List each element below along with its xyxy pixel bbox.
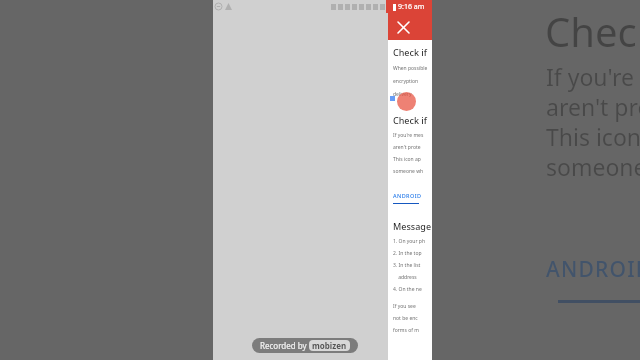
staticText: 9:16 am	[398, 2, 425, 12]
staticText: mobizen	[312, 340, 347, 351]
staticText: aren't protected	[546, 91, 640, 122]
staticText: 2. In the top	[393, 250, 422, 257]
staticText: aren't prote	[393, 144, 421, 151]
staticText: forms of m	[393, 327, 419, 334]
staticText: If you're messaging	[546, 61, 640, 92]
staticText: ANDROID	[546, 255, 640, 284]
staticText: delivery	[393, 91, 412, 98]
staticText: If you're mes	[393, 132, 424, 139]
staticText: Check if	[393, 46, 427, 58]
staticText: encryption	[393, 78, 419, 85]
staticText: Check if	[393, 114, 427, 126]
staticText: When possible	[393, 65, 428, 72]
staticText: 1. On your ph	[393, 238, 425, 245]
staticText: Recorded by	[260, 340, 309, 351]
staticText: This icon ap	[393, 156, 421, 163]
button[interactable]: ANDROID	[393, 192, 422, 199]
staticText: This icon appears	[546, 121, 640, 152]
button[interactable]: ANDROID	[546, 255, 640, 289]
staticText: not be enc	[393, 315, 418, 322]
staticText: Messages	[393, 220, 432, 232]
button[interactable]: Close	[392, 16, 414, 38]
staticText: 3. In the list	[393, 262, 421, 269]
staticText: address	[393, 274, 417, 281]
staticText: If you see	[393, 303, 416, 310]
staticText: Check if your	[545, 4, 640, 58]
staticText: 4. On the ne	[393, 286, 422, 293]
staticText: ANDROID	[393, 192, 422, 199]
staticText: someone wh	[393, 168, 424, 175]
staticText: someone who is	[546, 151, 640, 182]
